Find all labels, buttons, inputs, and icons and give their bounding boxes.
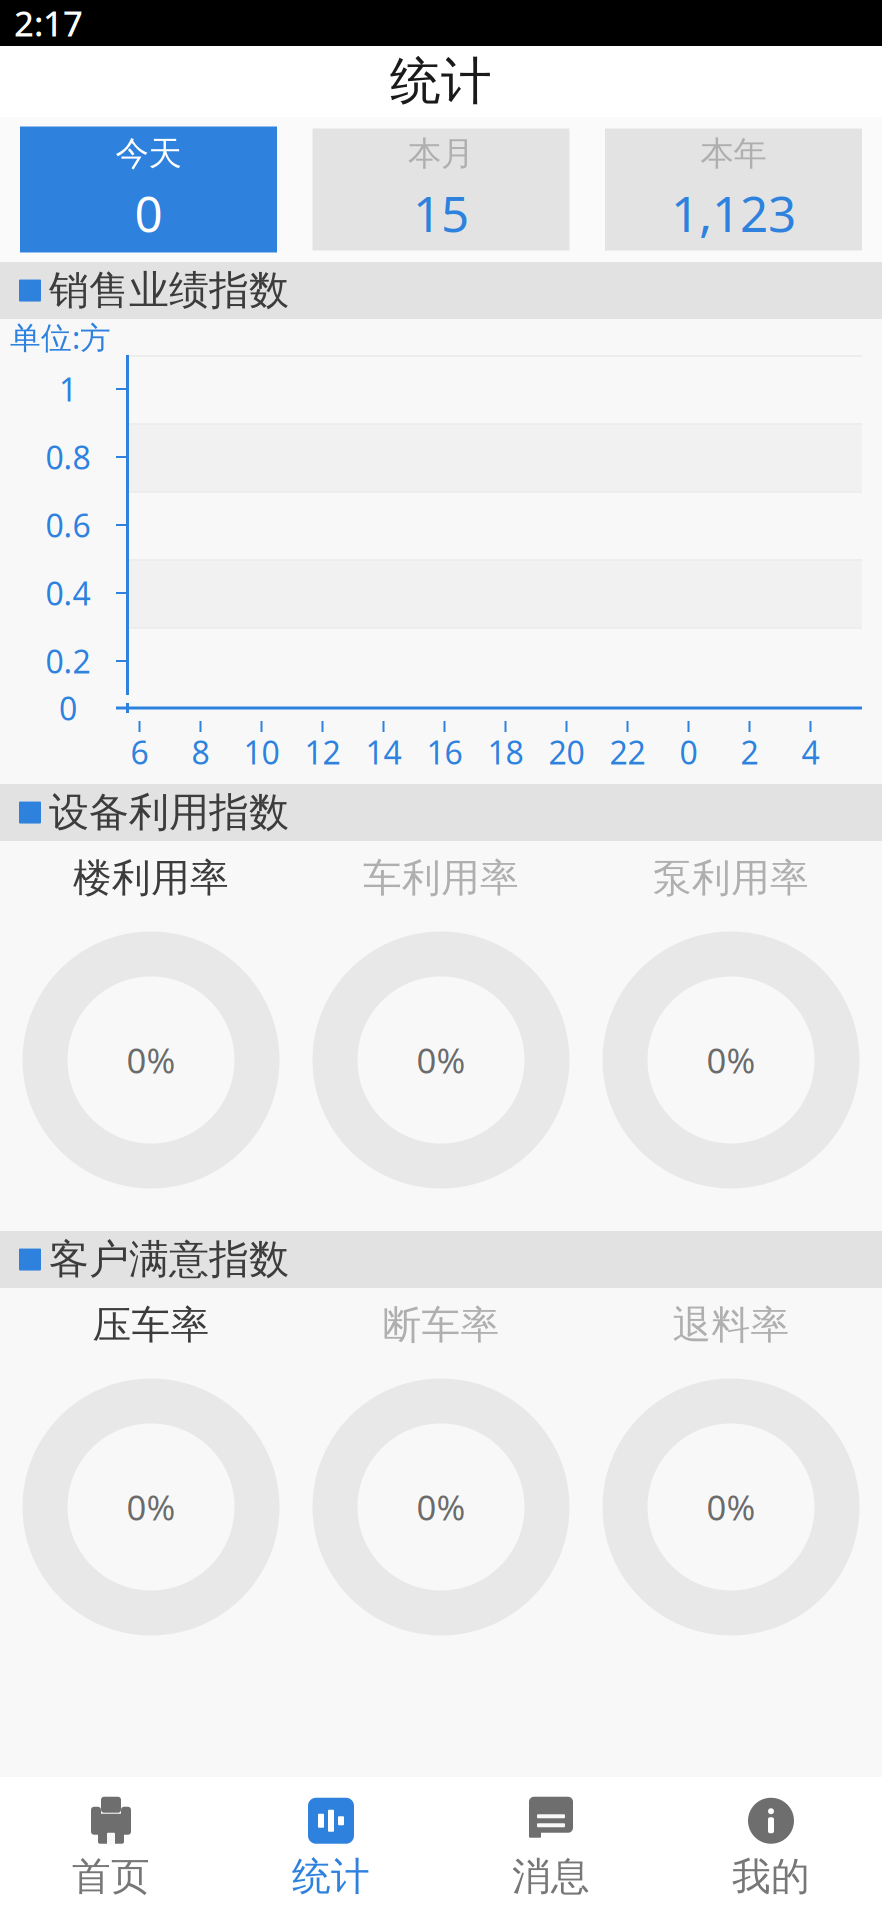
button[interactable]: 首页	[1, 1777, 221, 1920]
staticText: 2:17	[14, 0, 83, 46]
button[interactable]: 退料率	[586, 1288, 876, 1362]
staticText: 18	[487, 731, 523, 773]
button[interactable]: 今天	[20, 126, 277, 252]
staticText: 退料率	[672, 1301, 789, 1349]
staticText: 0%	[126, 1484, 175, 1530]
button[interactable]: 本年	[605, 128, 862, 250]
staticText: 15	[413, 180, 469, 246]
button[interactable]: 泵利用率	[586, 841, 876, 915]
staticText: 8	[191, 731, 209, 773]
staticText: 客户满意指数	[49, 1235, 289, 1284]
staticText: 12	[304, 731, 340, 773]
staticText: 压车率	[92, 1301, 209, 1349]
staticText: 14	[365, 731, 401, 773]
staticText: 0%	[706, 1037, 755, 1083]
staticText: 0%	[706, 1484, 755, 1530]
button[interactable]: 车利用率	[296, 841, 586, 915]
staticText: 0	[679, 731, 697, 773]
staticText: 1	[59, 368, 77, 410]
staticText: 统计	[292, 1853, 370, 1900]
staticText: 车利用率	[363, 854, 519, 902]
button[interactable]: 统计	[221, 1777, 441, 1920]
staticText: 统计	[390, 50, 492, 113]
staticText: 0%	[126, 1037, 175, 1083]
staticText: 2	[740, 731, 758, 773]
staticText: 泵利用率	[653, 854, 809, 902]
staticText: 首页	[72, 1853, 150, 1900]
staticText: 0.4	[45, 572, 90, 614]
staticText: 4	[801, 731, 819, 773]
staticText: 20	[548, 731, 584, 773]
staticText: 今天	[115, 133, 181, 174]
button[interactable]: 断车率	[296, 1288, 586, 1362]
staticText: 10	[243, 731, 279, 773]
staticText: 单位:方	[10, 317, 111, 357]
staticText: 我的	[732, 1853, 810, 1900]
button[interactable]: 消息	[441, 1777, 661, 1920]
staticText: 设备利用指数	[49, 788, 289, 837]
staticText: 22	[609, 731, 645, 773]
staticText: 6	[130, 731, 148, 773]
staticText: 0%	[416, 1484, 465, 1530]
staticText: 销售业绩指数	[49, 266, 289, 315]
button[interactable]: 压车率	[6, 1288, 296, 1362]
staticText: 1,123	[671, 180, 796, 246]
staticText: 楼利用率	[73, 854, 229, 902]
staticText: 本月	[408, 133, 474, 174]
button[interactable]: 我的	[661, 1777, 881, 1920]
staticText: 0	[59, 687, 77, 729]
button[interactable]: 楼利用率	[6, 841, 296, 915]
staticText: 本年	[700, 133, 766, 174]
staticText: 0.8	[45, 436, 90, 478]
staticText: 0%	[416, 1037, 465, 1083]
staticText: 0.2	[45, 640, 90, 682]
staticText: 断车率	[382, 1301, 499, 1349]
staticText: 消息	[512, 1853, 590, 1900]
staticText: 0	[134, 180, 162, 246]
staticText: 0.6	[45, 504, 90, 546]
staticText: 16	[426, 731, 462, 773]
button[interactable]: 本月	[312, 128, 569, 250]
